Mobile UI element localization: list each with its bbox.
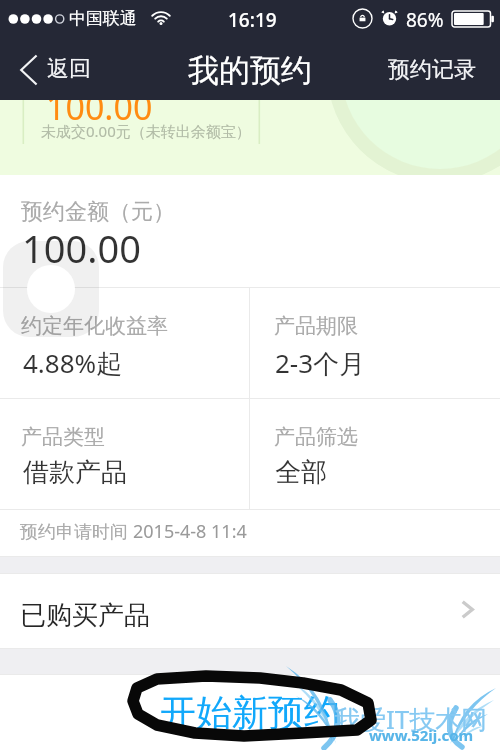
staticText: 返回 — [47, 55, 91, 83]
staticText: 未成交0.00元（未转出余额宝） — [41, 121, 251, 141]
staticText: 我的预约 — [188, 51, 312, 90]
staticText: 产品期限 — [274, 313, 358, 339]
staticText: 预约记录 — [388, 56, 476, 84]
staticText: www.52ij.com — [369, 725, 474, 745]
staticText: 预约金额（元） — [21, 198, 175, 226]
staticText: 2015-4-8 11:4 — [133, 519, 247, 544]
staticText: 开始新预约 — [160, 690, 340, 735]
staticText: 约定年化收益率 — [21, 313, 168, 339]
staticText: 86% — [406, 7, 444, 33]
staticText: 产品筛选 — [274, 424, 358, 450]
button[interactable]: 已购买产品 — [0, 574, 500, 648]
staticText: 100.00 — [46, 84, 153, 130]
staticText: 16:19 — [228, 7, 277, 33]
staticText: 100.00 — [22, 222, 141, 274]
staticText: 产品类型 — [21, 424, 105, 450]
staticText: 已购买产品 — [20, 599, 150, 632]
staticText: 2-3个月 — [275, 345, 366, 381]
button[interactable]: 返回 — [0, 47, 107, 93]
staticText: 4.88%起 — [23, 345, 123, 381]
button[interactable]: 开始新预约 — [0, 675, 500, 750]
staticText: 我爱IT技术网 — [334, 701, 488, 737]
staticText: 中国联通 — [69, 8, 137, 29]
button[interactable]: 预约记录 — [374, 44, 500, 96]
staticText: 预约申请时间 — [20, 519, 133, 544]
staticText: 借款产品 — [23, 456, 127, 489]
staticText: 全部 — [275, 456, 327, 489]
